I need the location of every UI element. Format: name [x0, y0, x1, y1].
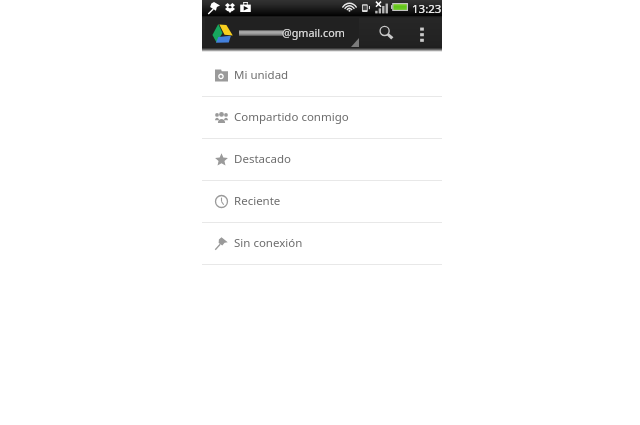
button[interactable]: Compartido conmigo [202, 97, 442, 138]
staticText: Mi unidad [234, 67, 289, 83]
button[interactable]: Reciente [202, 181, 442, 222]
staticText: Sin conexión [234, 235, 303, 251]
staticText: Destacado [234, 151, 291, 167]
button[interactable]: Search [365, 18, 401, 47]
button[interactable]: Destacado [202, 139, 442, 180]
staticText: Reciente [234, 193, 281, 209]
button[interactable]: More options [406, 18, 439, 47]
staticText: 13:23 [412, 1, 442, 17]
button[interactable]: @gmail.com [205, 18, 359, 47]
staticText: Compartido conmigo [234, 109, 349, 125]
staticText: @gmail.com [282, 25, 345, 40]
button[interactable]: Mi unidad [202, 55, 442, 96]
button[interactable]: Sin conexión [202, 223, 442, 264]
